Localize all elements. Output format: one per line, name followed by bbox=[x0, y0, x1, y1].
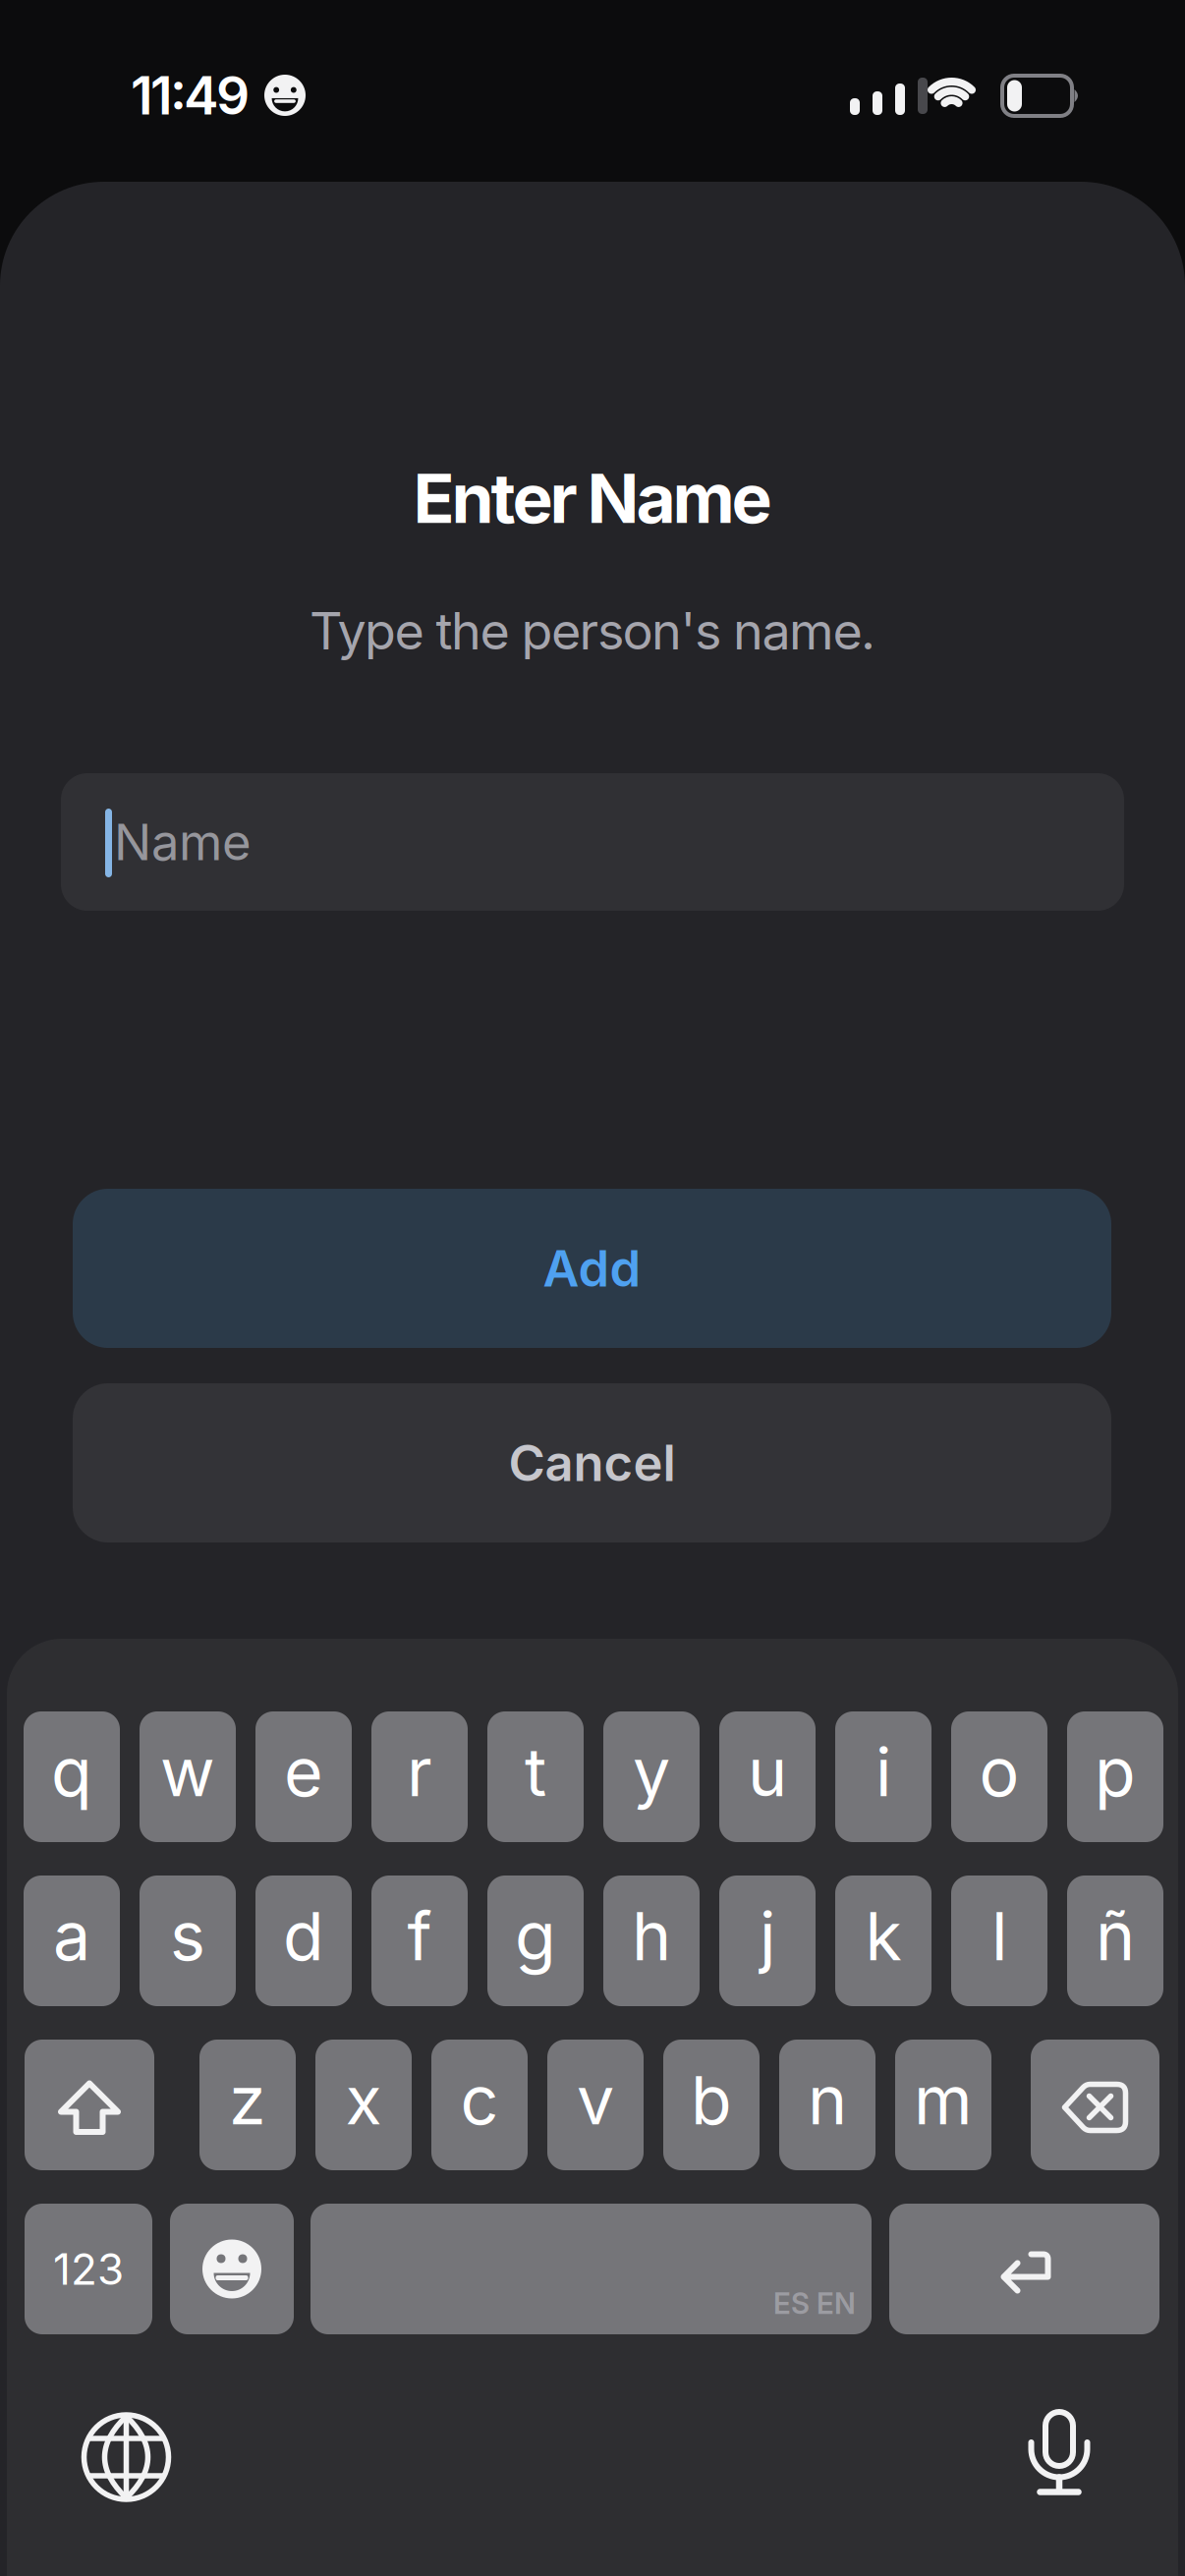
staticText: Add bbox=[543, 1239, 641, 1298]
button[interactable]: m bbox=[895, 2040, 991, 2170]
staticText: e bbox=[284, 1732, 323, 1811]
button[interactable]: w bbox=[140, 1711, 236, 1842]
button[interactable]: d bbox=[255, 1876, 352, 2006]
staticText: o bbox=[979, 1732, 1019, 1811]
staticText: k bbox=[865, 1897, 902, 1975]
button[interactable]: Dictation bbox=[1029, 2409, 1090, 2495]
staticText: b bbox=[691, 2061, 732, 2139]
staticText: Enter Name bbox=[413, 458, 772, 538]
staticText: g bbox=[515, 1897, 556, 1975]
button[interactable]: g bbox=[487, 1876, 584, 2006]
button[interactable]: 123 bbox=[25, 2204, 152, 2334]
button[interactable]: x bbox=[315, 2040, 412, 2170]
button[interactable]: n bbox=[779, 2040, 875, 2170]
button[interactable]: q bbox=[24, 1711, 120, 1842]
button[interactable]: Shift bbox=[25, 2040, 154, 2170]
button[interactable]: i bbox=[835, 1711, 931, 1842]
staticText: u bbox=[748, 1732, 787, 1811]
staticText: i bbox=[875, 1732, 891, 1811]
button[interactable]: Name bbox=[61, 773, 1124, 911]
button[interactable]: z bbox=[199, 2040, 296, 2170]
staticText: h bbox=[632, 1897, 671, 1975]
staticText: 123 bbox=[53, 2243, 124, 2294]
button[interactable]: ñ bbox=[1067, 1876, 1163, 2006]
staticText: c bbox=[460, 2061, 499, 2139]
button[interactable]: k bbox=[835, 1876, 931, 2006]
button[interactable]: p bbox=[1067, 1711, 1163, 1842]
button[interactable]: f bbox=[371, 1876, 468, 2006]
staticText: z bbox=[229, 2061, 266, 2139]
staticText: m bbox=[914, 2061, 973, 2139]
button[interactable]: Return bbox=[889, 2204, 1159, 2334]
staticText: d bbox=[283, 1897, 324, 1975]
button[interactable]: Add bbox=[73, 1189, 1111, 1348]
button[interactable]: Space bbox=[310, 2204, 872, 2334]
staticText: t bbox=[525, 1732, 546, 1811]
staticText: r bbox=[407, 1732, 432, 1811]
staticText: w bbox=[160, 1732, 215, 1811]
staticText: ES EN bbox=[773, 2287, 856, 2321]
button[interactable]: h bbox=[603, 1876, 700, 2006]
staticText: s bbox=[170, 1897, 205, 1975]
button[interactable]: r bbox=[371, 1711, 468, 1842]
staticText: y bbox=[633, 1732, 670, 1811]
button[interactable]: l bbox=[951, 1876, 1047, 2006]
staticText: f bbox=[407, 1897, 432, 1975]
staticText: Cancel bbox=[508, 1434, 676, 1492]
button[interactable]: Delete bbox=[1031, 2040, 1159, 2170]
button[interactable]: y bbox=[603, 1711, 700, 1842]
button[interactable]: v bbox=[547, 2040, 644, 2170]
staticText: q bbox=[51, 1732, 92, 1811]
button[interactable]: Emoji bbox=[170, 2204, 294, 2334]
staticText: v bbox=[577, 2061, 614, 2139]
staticText: n bbox=[808, 2061, 847, 2139]
button[interactable]: b bbox=[663, 2040, 760, 2170]
staticText: Type the person's name. bbox=[310, 601, 875, 661]
button[interactable]: u bbox=[719, 1711, 816, 1842]
button[interactable]: Next keyboard bbox=[82, 2413, 170, 2501]
button[interactable]: c bbox=[431, 2040, 528, 2170]
staticText: l bbox=[991, 1897, 1007, 1975]
staticText: x bbox=[345, 2061, 382, 2139]
button[interactable]: o bbox=[951, 1711, 1047, 1842]
staticText: a bbox=[53, 1897, 90, 1975]
staticText: j bbox=[760, 1897, 775, 1975]
button[interactable]: s bbox=[140, 1876, 236, 2006]
staticText: 11:49 bbox=[131, 64, 250, 126]
button[interactable]: j bbox=[719, 1876, 816, 2006]
staticText: p bbox=[1095, 1732, 1136, 1811]
staticText: Name bbox=[114, 813, 252, 871]
button[interactable]: e bbox=[255, 1711, 352, 1842]
button[interactable]: a bbox=[24, 1876, 120, 2006]
button[interactable]: Cancel bbox=[73, 1383, 1111, 1542]
button[interactable]: t bbox=[487, 1711, 584, 1842]
staticText: ñ bbox=[1096, 1897, 1135, 1975]
